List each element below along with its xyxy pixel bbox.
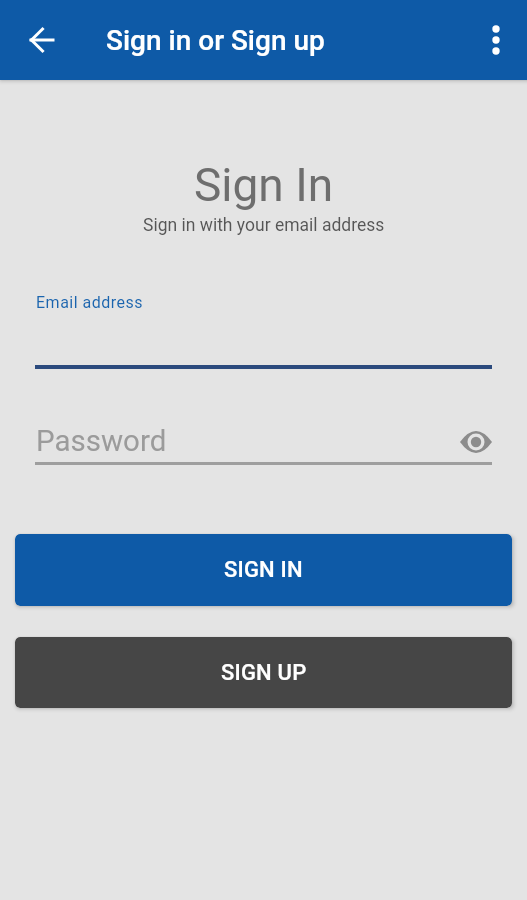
staticText: Password — [36, 424, 460, 459]
button[interactable]: SIGN UP — [15, 637, 512, 708]
staticText: SIGN UP — [221, 660, 307, 686]
button[interactable] — [476, 20, 516, 60]
staticText: SIGN IN — [224, 557, 303, 583]
staticText: Email address — [36, 293, 144, 312]
staticText: Sign in with your email address — [143, 215, 385, 236]
button[interactable] — [20, 18, 64, 62]
button[interactable]: SIGN IN — [15, 534, 512, 606]
button[interactable] — [460, 430, 492, 454]
staticText: Sign In — [194, 158, 334, 212]
staticText: Sign in or Sign up — [106, 24, 325, 57]
